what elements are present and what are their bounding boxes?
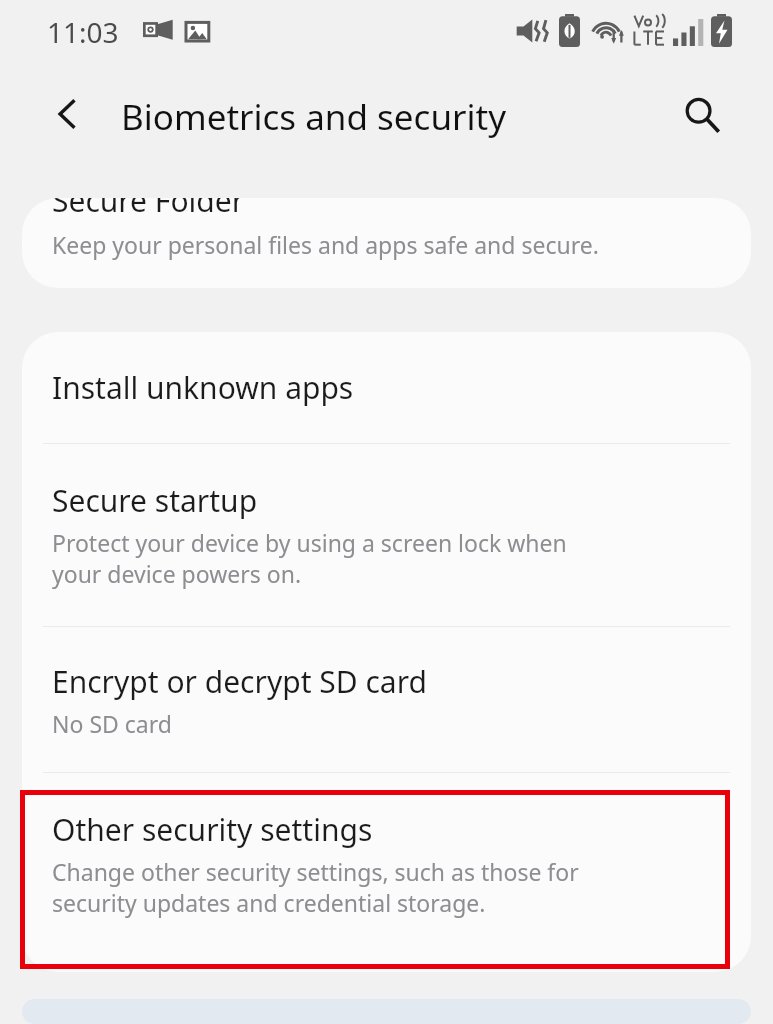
button[interactable]: Secure startup (22, 444, 751, 626)
button[interactable]: Other security settings (22, 773, 751, 955)
staticText: Other security settings (52, 809, 373, 850)
button[interactable]: Secure Folder (22, 198, 751, 288)
staticText: Secure startup (52, 480, 258, 521)
staticText: 11:03 (47, 13, 119, 51)
button[interactable]: Search (671, 84, 733, 146)
staticText: Install unknown apps (52, 367, 354, 408)
button[interactable]: Install unknown apps (22, 332, 751, 443)
staticText: Keep your personal files and apps safe a… (52, 229, 599, 260)
staticText: Biometrics and security (121, 93, 507, 141)
staticText: Encrypt or decrypt SD card (52, 661, 427, 702)
button[interactable]: Encrypt or decrypt SD card (22, 627, 751, 772)
staticText: Protect your device by using a screen lo… (52, 527, 567, 590)
staticText: Change other security settings, such as … (52, 856, 579, 919)
staticText: No SD card (52, 708, 172, 739)
staticText: Secure Folder (52, 198, 245, 221)
button[interactable]: Back (38, 84, 98, 144)
